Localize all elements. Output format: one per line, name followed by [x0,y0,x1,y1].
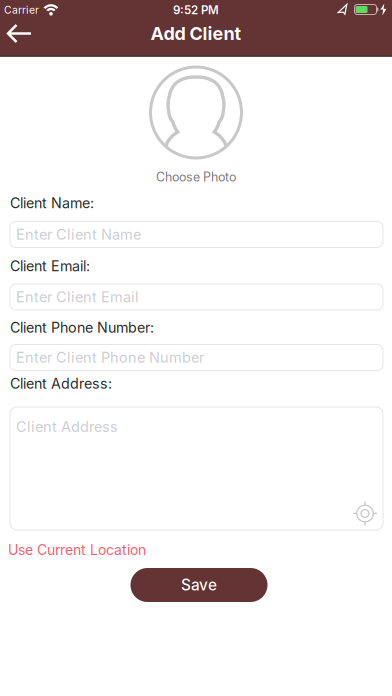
staticText: Choose Photo [156,169,236,184]
staticText: Use Current Location [8,541,146,558]
staticText: Client Address [16,418,118,436]
staticText: Carrier [4,4,39,16]
staticText: Client Name: [10,194,94,212]
staticText: 9:52 PM [173,3,219,17]
staticText: Enter Client Name [16,226,141,243]
button[interactable]: Save [130,568,267,602]
staticText: Enter Client Email [16,288,139,306]
staticText: Save [181,576,217,594]
button[interactable]: Back [1,18,37,48]
button[interactable]: Enter Client Name [10,221,383,247]
button[interactable]: Use Current Location [8,541,146,558]
button[interactable]: Enter Client Email [10,284,383,310]
staticText: Client Email: [10,257,90,275]
staticText: Add Client [150,23,241,44]
button[interactable]: Enter Client Phone Number [10,344,383,370]
staticText: Client Address: [10,375,112,392]
staticText: Enter Client Phone Number [16,349,204,366]
staticText: Client Phone Number: [10,319,154,336]
button[interactable]: Choose Photo [148,65,243,184]
button[interactable]: Client Address [10,407,383,530]
